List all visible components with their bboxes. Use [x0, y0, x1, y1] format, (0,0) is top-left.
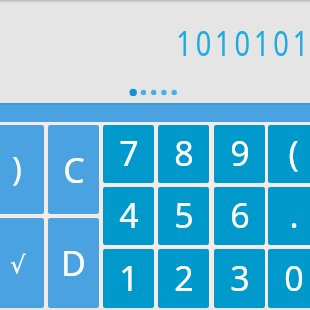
staticText: 4 — [119, 192, 139, 238]
staticText: ( — [288, 130, 299, 176]
button[interactable]: Open parenthesis — [268, 125, 310, 183]
staticText: 8 — [174, 130, 194, 176]
staticText: 9 — [230, 130, 250, 176]
button[interactable]: 9 — [214, 125, 265, 183]
button[interactable]: 2 — [158, 249, 209, 308]
button[interactable]: 8 — [158, 125, 209, 183]
button[interactable]: 5 — [158, 187, 209, 245]
staticText: . — [289, 192, 299, 238]
button[interactable]: 1 — [103, 249, 154, 308]
button[interactable]: Square root — [0, 218, 44, 308]
button[interactable]: 3 — [214, 249, 265, 308]
button[interactable]: Decimal point — [268, 187, 310, 245]
button[interactable]: Clear — [48, 125, 99, 214]
staticText: 3 — [230, 255, 250, 301]
staticText: 0 — [284, 255, 304, 301]
staticText: 5 — [174, 192, 194, 238]
button[interactable]: Close parenthesis — [0, 125, 44, 214]
staticText: 2 — [174, 255, 194, 301]
staticText: 1 — [119, 255, 139, 301]
staticText: ) — [12, 147, 22, 191]
staticText: 7 — [119, 130, 139, 176]
staticText: C — [63, 147, 85, 193]
staticText: 1010101 — [176, 20, 310, 66]
staticText: √ — [10, 251, 26, 279]
button[interactable]: 6 — [214, 187, 265, 245]
button[interactable]: Delete — [48, 218, 99, 308]
staticText: D — [61, 240, 86, 286]
staticText: 6 — [230, 192, 250, 238]
button[interactable]: 4 — [103, 187, 154, 245]
button[interactable]: 0 — [268, 249, 310, 308]
button[interactable]: 7 — [103, 125, 154, 183]
